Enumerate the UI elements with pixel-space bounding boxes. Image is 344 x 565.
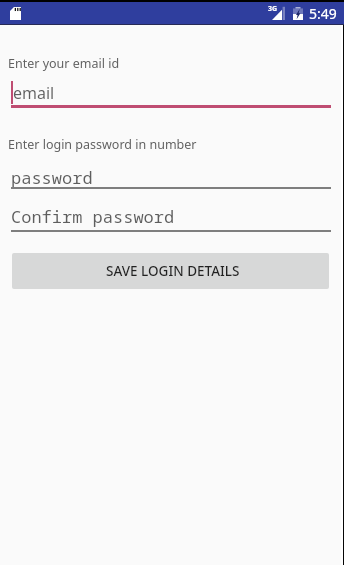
staticText: 3G [268, 4, 278, 14]
other: Battery charging [293, 7, 303, 20]
button[interactable]: SAVE LOGIN DETAILS [12, 253, 329, 289]
staticText: Enter your email id [8, 55, 120, 72]
button[interactable]: email [0, 79, 344, 109]
other: SD card inserted [10, 7, 21, 20]
staticText: 5:49 [309, 4, 337, 23]
staticText: SAVE LOGIN DETAILS [106, 262, 240, 280]
button[interactable]: Confirm password [0, 205, 344, 233]
staticText: Confirm password [11, 205, 175, 228]
button[interactable]: password [0, 166, 344, 190]
staticText: email [13, 82, 55, 104]
staticText: password [11, 166, 93, 189]
staticText: Enter login password in number [8, 136, 197, 153]
other: Signal strength [272, 9, 285, 20]
